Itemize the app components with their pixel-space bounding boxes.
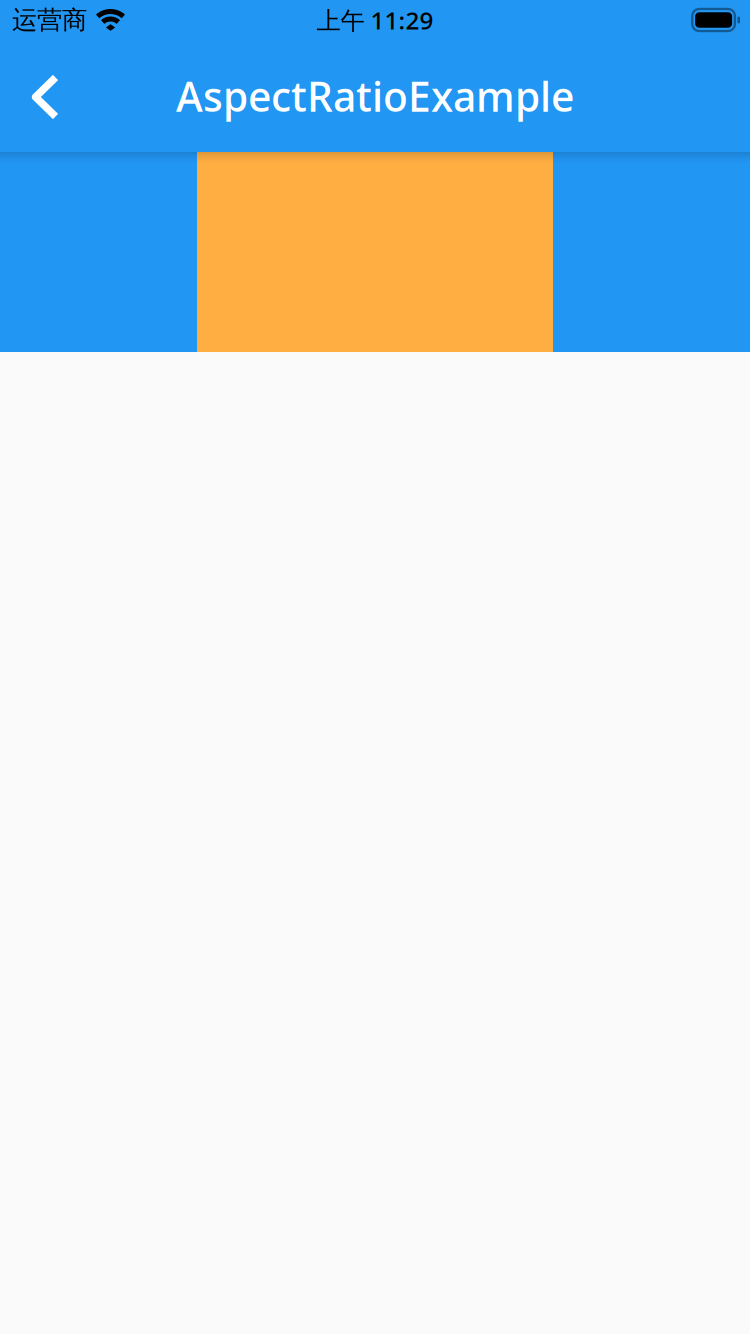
staticText: 上午 11:29: [316, 3, 433, 37]
staticText: 运营商: [12, 4, 87, 35]
staticText: AspectRatioExample: [176, 68, 574, 124]
button[interactable]: Back: [0, 45, 95, 147]
